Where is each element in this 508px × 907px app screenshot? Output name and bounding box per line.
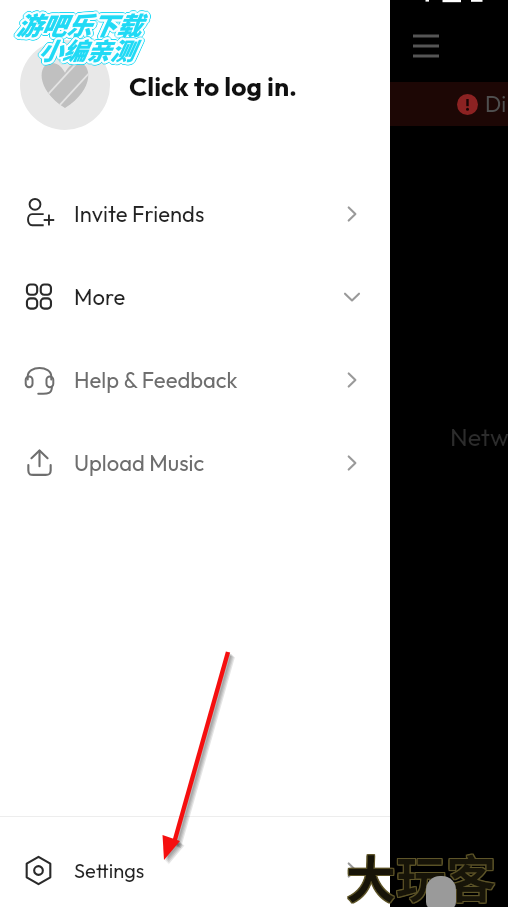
staticText: 游吧乐下载 [16,6,142,42]
staticText: 小编亲测 [41,33,137,68]
staticText: 游吧乐下载 [16,5,142,41]
staticText: 小编亲测 [36,32,132,67]
button[interactable]: Invite Friends [0,172,390,255]
staticText: 小编亲测 [39,31,135,66]
staticText: 游吧乐下载 [15,3,141,39]
staticText: 小编亲测 [38,33,134,68]
staticText: 游吧乐下载 [13,5,139,41]
staticText: 游吧乐下载 [16,4,142,40]
staticText: 小编亲测 [38,32,134,67]
button[interactable]: Settings [0,833,390,907]
button[interactable]: Upload Music [0,421,390,504]
staticText: 游吧乐下载 [18,8,144,44]
button[interactable]: Help & Feedback [0,338,390,421]
staticText: Help & Feedback [74,366,238,394]
staticText: 小编亲测 [35,31,131,66]
staticText: 小编亲测 [37,34,133,69]
staticText: 游吧乐下载 [16,9,142,45]
staticText: 小编亲测 [38,34,134,69]
staticText: 游吧乐下载 [13,6,139,42]
staticText: 大玩客 [345,839,495,907]
staticText: 大玩客 [345,840,495,907]
staticText: 大玩客 [347,840,497,907]
staticText: 游吧乐下载 [14,8,140,44]
staticText: 小编亲测 [35,33,131,68]
staticText: 小编亲测 [38,29,134,64]
staticText: 游吧乐下载 [19,7,145,43]
staticText: 大玩客 [346,840,496,907]
staticText: 游吧乐下载 [16,3,142,39]
staticText: 游吧乐下载 [18,5,144,41]
staticText: 游吧乐下载 [19,5,145,41]
staticText: 小编亲测 [40,32,136,67]
staticText: 小编亲测 [41,31,137,66]
staticText: Upload Music [74,449,205,477]
staticText: 游吧乐下载 [17,4,143,40]
staticText: 小编亲测 [40,34,136,69]
staticText: Settings [74,858,145,883]
staticText: 游吧乐下载 [16,7,142,43]
staticText: Disconnected [485,90,508,118]
staticText: 游吧乐下载 [18,6,144,42]
staticText: 小编亲测 [38,35,134,70]
staticText: 小编亲测 [39,30,135,65]
staticText: 小编亲测 [35,32,131,67]
staticText: 游吧乐下载 [17,5,143,41]
staticText: 游吧乐下载 [17,7,143,43]
staticText: 游吧乐下载 [14,6,140,42]
button[interactable]: Click to log in. [0,40,390,130]
staticText: 大玩客 [345,841,495,907]
staticText: 游吧乐下载 [15,7,141,43]
staticText: 小编亲测 [37,35,133,70]
staticText: 游吧乐下载 [15,6,141,42]
staticText: 游吧乐下载 [17,3,143,39]
staticText: 小编亲测 [37,33,133,68]
staticText: 小编亲测 [36,34,132,69]
staticText: 大玩客 [346,839,496,907]
staticText: 游吧乐下载 [14,7,140,43]
staticText: 游吧乐下载 [19,6,145,42]
staticText: 游吧乐下载 [13,7,139,43]
staticText: 游吧乐下载 [15,8,141,44]
staticText: 游吧乐下载 [15,5,141,41]
staticText: 游吧乐下载 [18,7,144,43]
staticText: More [74,283,126,311]
staticText: 小编亲测 [40,33,136,68]
staticText: 小编亲测 [39,35,135,70]
staticText: 小编亲测 [36,31,132,66]
staticText: 游吧乐下载 [15,9,141,45]
staticText: 游吧乐下载 [15,4,141,40]
staticText: 小编亲测 [39,33,135,68]
staticText: 小编亲测 [40,31,136,66]
staticText: 小编亲测 [39,29,135,64]
staticText: 小编亲测 [37,29,133,64]
staticText: 小编亲测 [37,32,133,67]
staticText: 游吧乐下载 [14,4,140,40]
staticText: Invite Friends [74,200,205,228]
staticText: 小编亲测 [39,34,135,69]
staticText: 小编亲测 [36,33,132,68]
staticText: 游吧乐下载 [18,4,144,40]
staticText: 游吧乐下载 [17,6,143,42]
staticText: 小编亲测 [36,30,132,65]
staticText: 游吧乐下载 [17,8,143,44]
staticText: 小编亲测 [40,30,136,65]
staticText: 小编亲测 [37,30,133,65]
staticText: 小编亲测 [37,31,133,66]
staticText: 小编亲测 [39,32,135,67]
staticText: 游吧乐下载 [14,5,140,41]
staticText: Network [450,421,508,453]
staticText: 游吧乐下载 [17,9,143,45]
staticText: 小编亲测 [41,32,137,67]
staticText: Click to log in. [129,69,298,102]
button[interactable]: More [0,255,390,338]
staticText: 游吧乐下载 [16,8,142,44]
staticText: 大玩客 [346,841,496,907]
button[interactable]: Open navigation drawer [404,24,450,70]
staticText: 大玩客 [347,839,497,907]
staticText: 小编亲测 [38,31,134,66]
staticText: 大玩客 [347,841,497,907]
staticText: 小编亲测 [38,30,134,65]
